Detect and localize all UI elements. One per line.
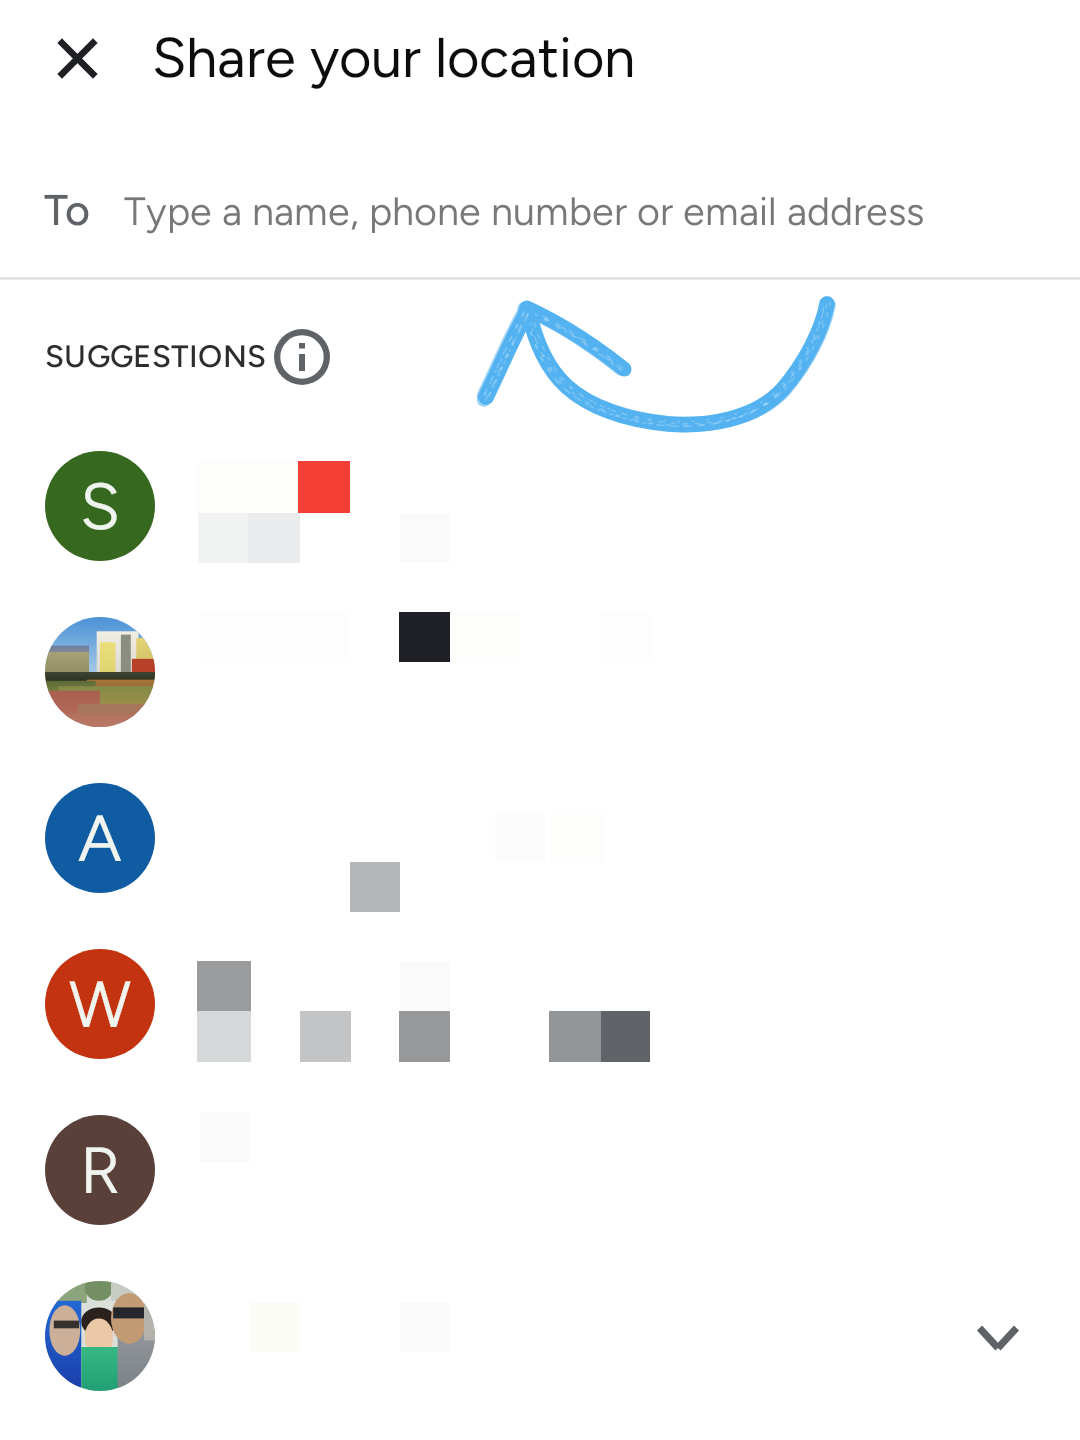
button[interactable]: W [45,949,155,1059]
button[interactable]: Contact photo [45,1281,155,1391]
button[interactable]: Contact photo [45,617,155,727]
button[interactable]: S [45,451,155,561]
button[interactable]: A [45,783,155,893]
button[interactable]: Close [40,21,115,96]
button[interactable]: Expand [952,1292,1044,1384]
button[interactable]: R [45,1115,155,1225]
button[interactable]: About suggestions [274,329,330,385]
